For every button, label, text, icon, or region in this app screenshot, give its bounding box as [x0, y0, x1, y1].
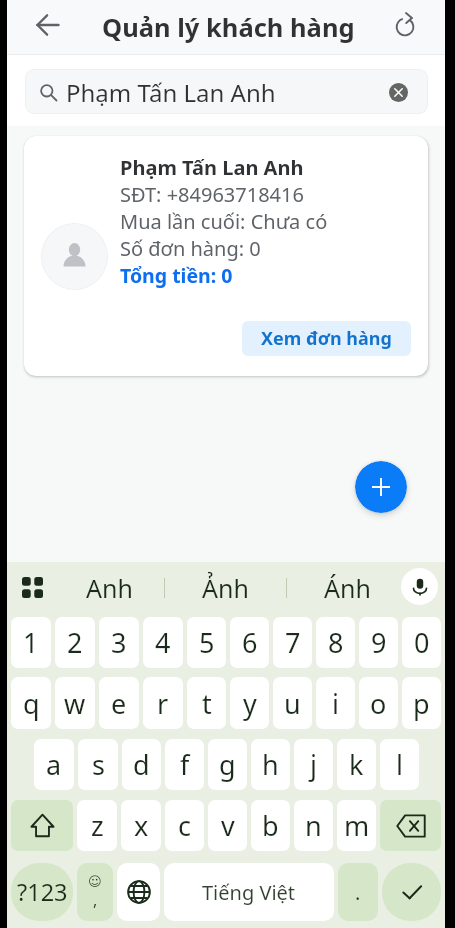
staticText: Quản lý khách hàng	[102, 10, 355, 45]
button[interactable]: v	[208, 800, 247, 851]
button[interactable]: Keyboard toolbar	[10, 565, 54, 609]
button[interactable]: g	[208, 739, 247, 790]
button[interactable]: f	[165, 739, 204, 790]
button[interactable]: y	[230, 677, 269, 729]
staticText: q	[23, 685, 40, 722]
button[interactable]: p	[402, 677, 441, 729]
staticText: b	[262, 807, 279, 844]
staticText: 0	[414, 624, 430, 661]
button[interactable]: Back	[26, 3, 70, 47]
staticText: 4	[155, 624, 171, 661]
button[interactable]: Backspace	[380, 800, 441, 851]
button[interactable]: h	[251, 739, 290, 790]
button[interactable]: o	[359, 677, 398, 729]
staticText: Số đơn hàng: 0	[120, 235, 261, 262]
button[interactable]: Phạm Tấn Lan Anh	[24, 136, 428, 376]
button[interactable]: m	[337, 800, 376, 851]
button[interactable]: Ánh	[299, 562, 395, 613]
staticText: z	[91, 807, 104, 844]
staticText: 3	[111, 624, 127, 661]
staticText: c	[178, 807, 191, 844]
staticText: l	[396, 746, 403, 783]
staticText: r	[157, 685, 169, 722]
button[interactable]: 6	[230, 617, 269, 668]
staticText: e	[111, 685, 127, 722]
button[interactable]: 0	[402, 617, 441, 668]
button[interactable]: 2	[55, 617, 95, 668]
staticText: .	[355, 879, 361, 906]
staticText: t	[202, 685, 212, 722]
staticText: u	[284, 685, 301, 722]
staticText: h	[262, 746, 279, 783]
button[interactable]: 1	[11, 617, 51, 668]
staticText: Phạm Tấn Lan Anh	[66, 76, 276, 109]
staticText: p	[413, 685, 430, 722]
staticText: Anh	[86, 571, 133, 605]
staticText: 9	[371, 624, 387, 661]
staticText: 8	[328, 624, 344, 661]
staticText: y	[243, 685, 257, 722]
staticText: ☺	[88, 874, 102, 889]
button[interactable]: s	[78, 739, 118, 790]
staticText: 6	[242, 624, 258, 661]
button[interactable]: 4	[143, 617, 183, 668]
button[interactable]: a	[34, 739, 74, 790]
button[interactable]: Voice input	[397, 564, 441, 608]
button[interactable]: e	[99, 677, 139, 729]
button[interactable]: u	[273, 677, 312, 729]
button[interactable]: Change language	[117, 863, 160, 921]
button[interactable]: Ảnh	[177, 562, 273, 613]
button[interactable]: Xem đơn hàng	[242, 321, 411, 356]
button[interactable]: j	[294, 739, 333, 790]
button[interactable]: Anh	[61, 562, 157, 613]
button[interactable]: w	[55, 677, 95, 729]
button[interactable]: 5	[187, 617, 226, 668]
button[interactable]: Period	[338, 863, 378, 921]
button[interactable]: z	[77, 800, 117, 851]
staticText: 1	[23, 624, 39, 661]
button[interactable]: 3	[99, 617, 139, 668]
button[interactable]: Refresh	[383, 5, 427, 49]
button[interactable]: 8	[316, 617, 355, 668]
staticText: ?123	[17, 876, 68, 908]
button[interactable]: Space	[164, 863, 334, 921]
staticText: s	[92, 746, 105, 783]
staticText: Tiếng Việt	[202, 879, 296, 906]
button[interactable]: r	[143, 677, 183, 729]
staticText: o	[370, 685, 387, 722]
button[interactable]: l	[380, 739, 419, 790]
staticText: 2	[67, 624, 83, 661]
button[interactable]: Add customer	[355, 461, 407, 513]
button[interactable]: Enter	[382, 863, 441, 921]
button[interactable]: Phạm Tấn Lan Anh	[25, 69, 428, 114]
button[interactable]: i	[316, 677, 355, 729]
button[interactable]: q	[11, 677, 51, 729]
staticText: d	[133, 746, 150, 783]
staticText: x	[134, 807, 149, 844]
staticText: Phạm Tấn Lan Anh	[120, 154, 304, 181]
staticText: i	[332, 685, 339, 722]
staticText: f	[180, 746, 190, 783]
staticText: Xem đơn hàng	[261, 326, 392, 351]
button[interactable]: 7	[273, 617, 312, 668]
button[interactable]: Clear search	[380, 74, 416, 110]
button[interactable]: k	[337, 739, 376, 790]
button[interactable]: Symbols	[11, 863, 73, 921]
button[interactable]: Shift	[11, 800, 73, 851]
button[interactable]: n	[294, 800, 333, 851]
button[interactable]: 9	[359, 617, 398, 668]
staticText: w	[64, 685, 86, 722]
button[interactable]: d	[122, 739, 161, 790]
button[interactable]: Emoji	[77, 863, 113, 921]
staticText: j	[310, 746, 317, 783]
staticText: Tổng tiền: 0	[120, 262, 233, 289]
staticText: SĐT: +84963718416	[120, 181, 304, 208]
staticText: Ánh	[324, 571, 371, 605]
button[interactable]: x	[121, 800, 161, 851]
button[interactable]: c	[165, 800, 204, 851]
staticText: g	[219, 746, 236, 783]
staticText: a	[46, 746, 62, 783]
staticText: n	[305, 807, 322, 844]
button[interactable]: t	[187, 677, 226, 729]
button[interactable]: b	[251, 800, 290, 851]
